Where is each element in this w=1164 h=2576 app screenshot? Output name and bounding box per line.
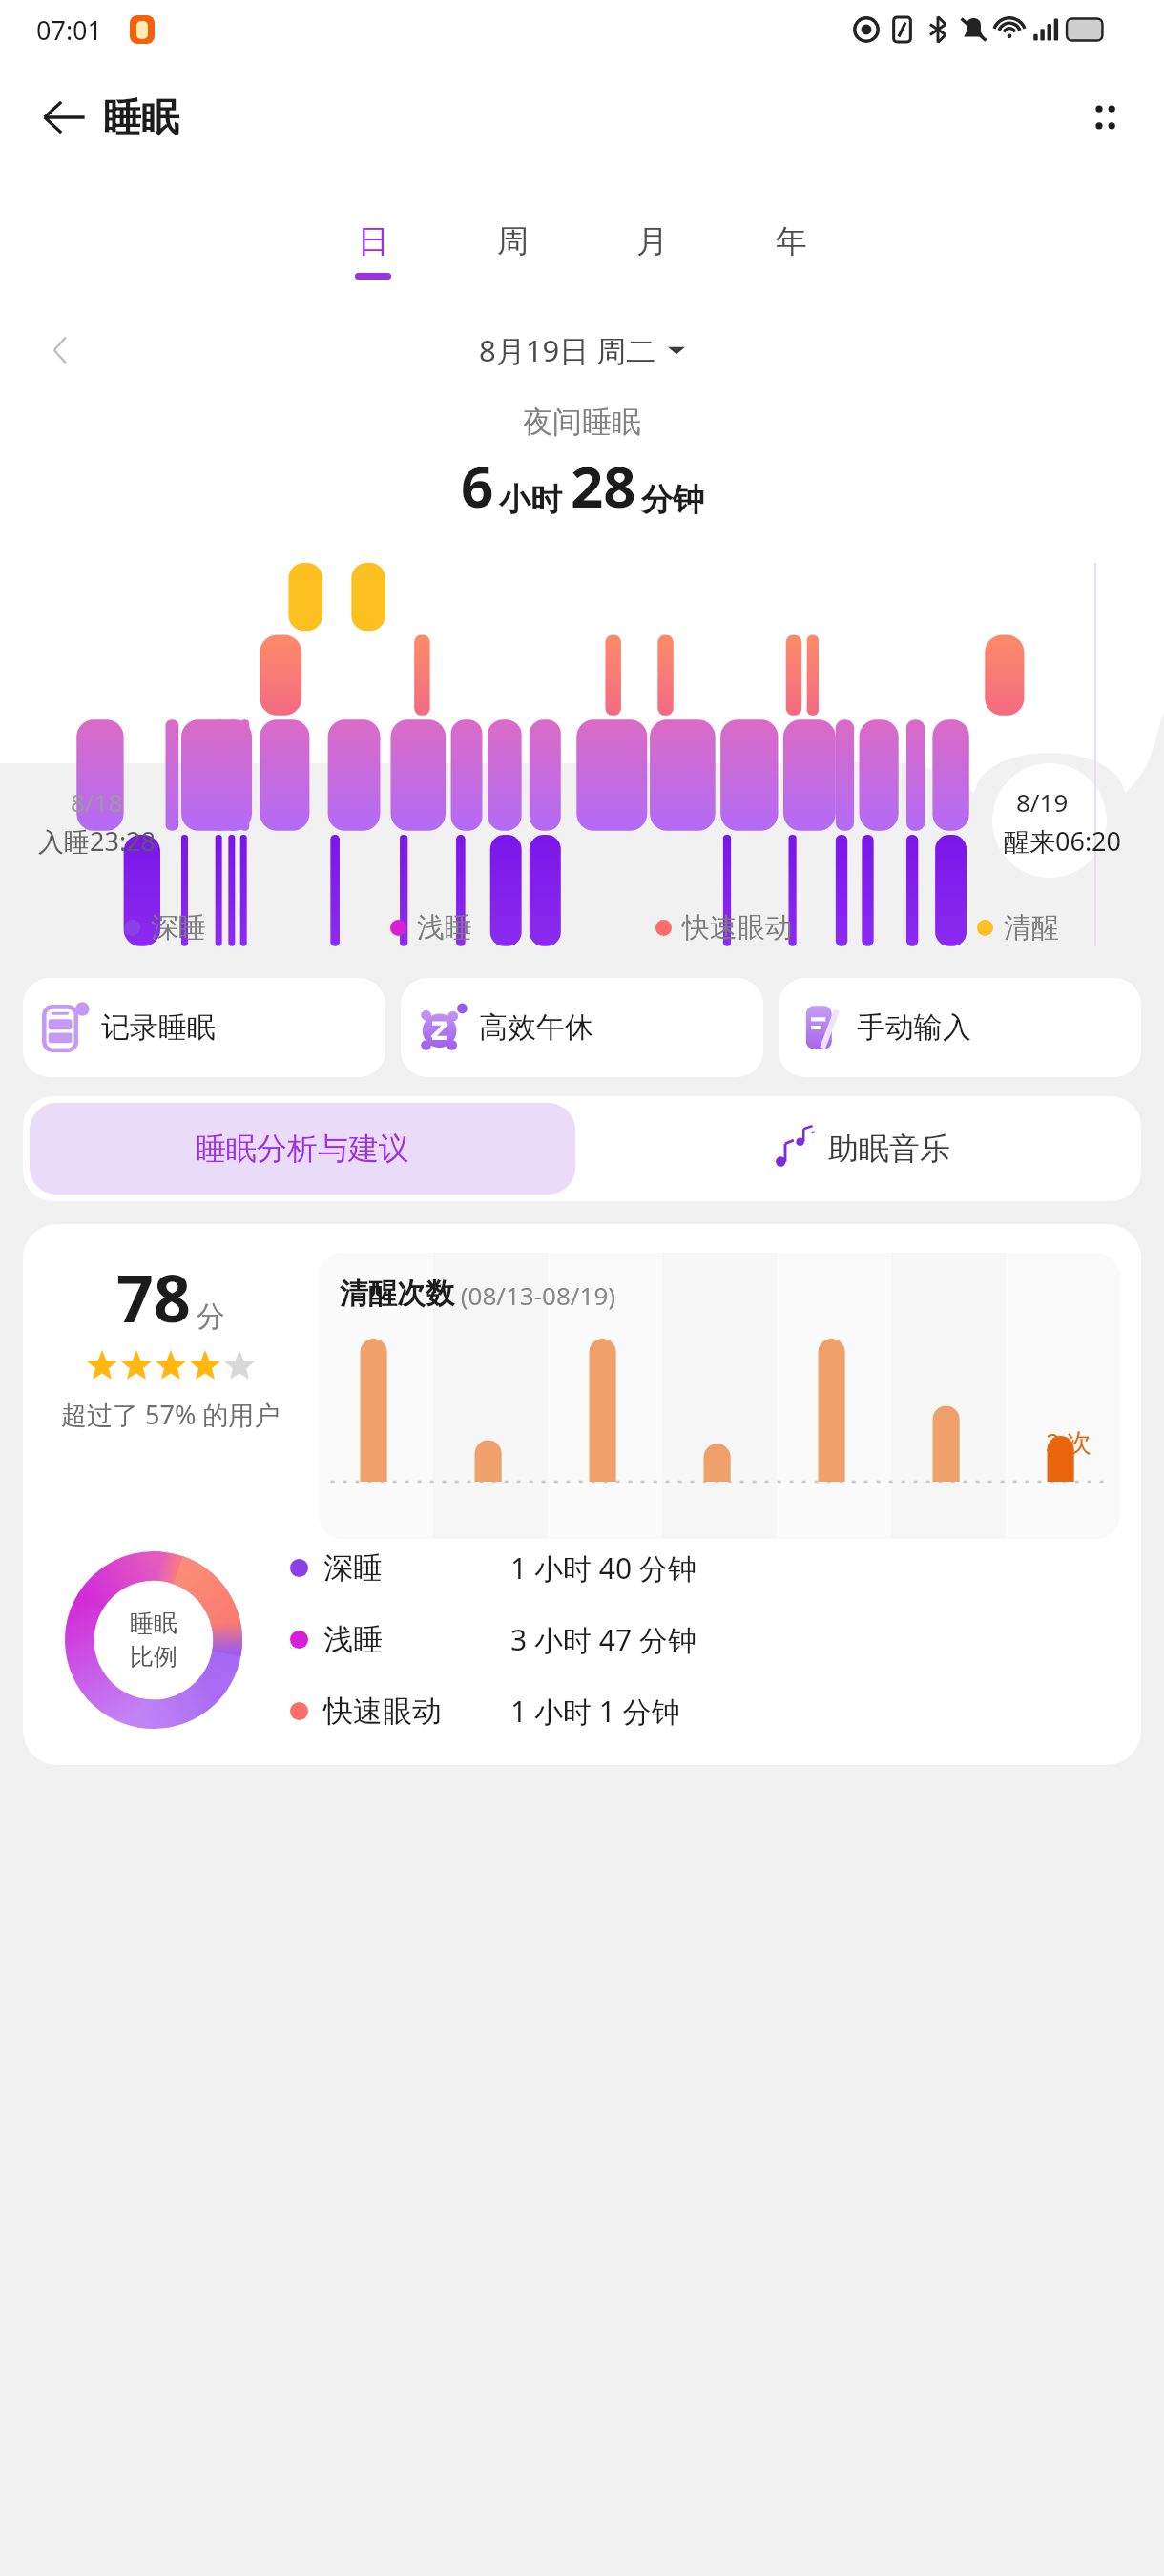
staticText: 助眠音乐 — [828, 1130, 950, 1168]
staticText: 睡眠分析与建议 — [196, 1130, 409, 1168]
staticText: 睡眠 — [130, 1609, 177, 1638]
button[interactable]: 助眠音乐 — [582, 1096, 1141, 1201]
staticText: 年 — [776, 221, 807, 261]
button[interactable]: 手动输入 — [779, 978, 1141, 1077]
staticText: 高效午休 — [479, 1009, 593, 1046]
staticText: 清醒 — [1004, 910, 1059, 945]
staticText: 8/18 — [71, 785, 123, 819]
button[interactable]: Back — [23, 76, 105, 158]
staticText: (08/13-08/19) — [454, 1278, 616, 1312]
staticText: 月 — [636, 221, 668, 261]
staticText: 夜间睡眠 — [0, 404, 1164, 441]
staticText: 1 小时 40 分钟 — [510, 1548, 696, 1588]
staticText: 比例 — [130, 1642, 177, 1672]
staticText: 记录睡眠 — [101, 1009, 216, 1046]
button[interactable]: 年 — [721, 218, 861, 283]
staticText: 醒来06:20 — [1004, 823, 1122, 859]
staticText: 清醒次数 — [340, 1276, 454, 1312]
staticText: 深睡 — [151, 910, 206, 945]
staticText: 分钟 — [641, 480, 704, 520]
button[interactable]: 日 — [303, 218, 443, 283]
button[interactable]: 周 — [443, 218, 582, 283]
staticText: 入睡23:28 — [38, 823, 156, 859]
staticText: 分 — [197, 1298, 225, 1335]
button[interactable]: 记录睡眠 — [23, 978, 385, 1077]
staticText: 6 — [461, 447, 494, 525]
staticText: 07:01 — [36, 12, 103, 48]
staticText: 浅睡 — [323, 1621, 510, 1658]
staticText: 周 — [497, 221, 529, 261]
staticText: 浅睡 — [417, 910, 472, 945]
staticText: 28 — [571, 447, 636, 525]
staticText: 8月19日 周二 — [479, 330, 656, 370]
staticText: 快速眼动 — [323, 1693, 510, 1730]
button[interactable]: 睡眠分析与建议 — [30, 1103, 575, 1195]
staticText: 手动输入 — [857, 1009, 971, 1046]
staticText: 日 — [358, 221, 389, 261]
button[interactable]: More options — [1067, 79, 1143, 156]
staticText: 深睡 — [323, 1549, 510, 1587]
staticText: 1 小时 1 分钟 — [510, 1692, 680, 1731]
staticText: 78 — [116, 1253, 191, 1341]
staticText: 小时 — [499, 480, 562, 520]
staticText: 睡眠 — [103, 93, 179, 141]
staticText: 超过了 57% 的用户 — [61, 1397, 281, 1432]
button[interactable]: 月 — [582, 218, 721, 283]
button[interactable]: 8月19日 周二 — [473, 324, 691, 376]
staticText: 3 小时 47 分钟 — [510, 1620, 696, 1659]
button[interactable]: 78 — [23, 1224, 1141, 1765]
staticText: 2 次 — [1046, 1424, 1091, 1459]
staticText: 快速眼动 — [682, 910, 793, 945]
button[interactable]: 高效午休 — [401, 978, 763, 1077]
staticText: 8/19 — [1016, 785, 1069, 819]
button[interactable]: Previous day — [32, 322, 90, 379]
